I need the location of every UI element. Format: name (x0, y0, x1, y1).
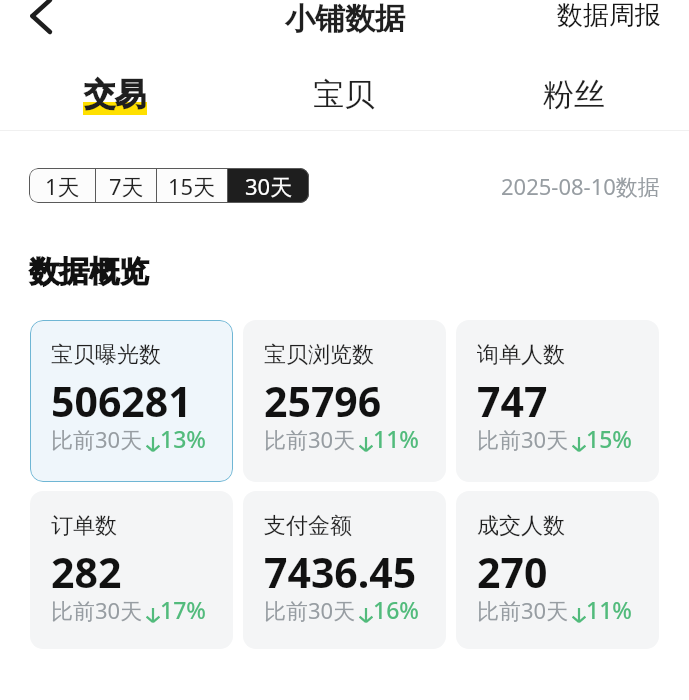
staticText: 比前30天 (51, 595, 143, 625)
staticText: 成交人数 (477, 512, 565, 540)
button[interactable]: 15天 (157, 168, 227, 203)
button[interactable]: 支付金额 (243, 491, 446, 649)
button[interactable]: 1天 (29, 168, 95, 203)
staticText: 11% (586, 594, 632, 625)
staticText: 270 (477, 544, 548, 600)
staticText: 比前30天 (264, 595, 356, 625)
staticText: 7436.45 (264, 544, 417, 600)
staticText: 粉丝 (543, 75, 605, 114)
button[interactable]: Back (18, 0, 66, 40)
staticText: 询单人数 (477, 341, 565, 369)
staticText: 7天 (109, 171, 144, 201)
staticText: 交易 (84, 75, 146, 114)
staticText: 25796 (264, 373, 382, 429)
staticText: 宝贝浏览数 (264, 341, 374, 369)
button[interactable]: 询单人数 (456, 320, 659, 482)
staticText: 宝贝 (313, 75, 375, 114)
staticText: 1天 (45, 171, 80, 201)
button[interactable]: 宝贝 (229, 58, 459, 130)
button[interactable]: 数据周报 (557, 0, 661, 32)
staticText: 支付金额 (264, 512, 352, 540)
staticText: 比前30天 (477, 595, 569, 625)
staticText: 282 (51, 544, 122, 600)
staticText: 11% (373, 423, 419, 454)
staticText: 30天 (245, 171, 293, 201)
staticText: 宝贝曝光数 (51, 341, 161, 369)
staticText: 17% (160, 594, 206, 625)
staticText: 506281 (51, 373, 192, 429)
button[interactable]: 30天 (228, 168, 309, 203)
staticText: 订单数 (51, 512, 117, 540)
button[interactable]: 宝贝曝光数 (30, 320, 233, 482)
staticText: 比前30天 (264, 424, 356, 454)
staticText: 比前30天 (51, 424, 143, 454)
staticText: 15天 (168, 171, 216, 201)
staticText: 15% (586, 423, 632, 454)
staticText: 16% (373, 594, 419, 625)
button[interactable]: 订单数 (30, 491, 233, 649)
button[interactable]: 粉丝 (459, 58, 689, 130)
button[interactable]: 7天 (96, 168, 156, 203)
button[interactable]: 交易 (0, 58, 229, 130)
staticText: 数据概览 (29, 253, 149, 291)
staticText: 2025-08-10数据 (501, 171, 660, 201)
staticText: 小铺数据 (285, 0, 405, 38)
staticText: 13% (160, 423, 206, 454)
button[interactable]: 宝贝浏览数 (243, 320, 446, 482)
staticText: 747 (477, 373, 548, 429)
button[interactable]: 成交人数 (456, 491, 659, 649)
staticText: 比前30天 (477, 424, 569, 454)
staticText: 数据周报 (557, 0, 661, 32)
